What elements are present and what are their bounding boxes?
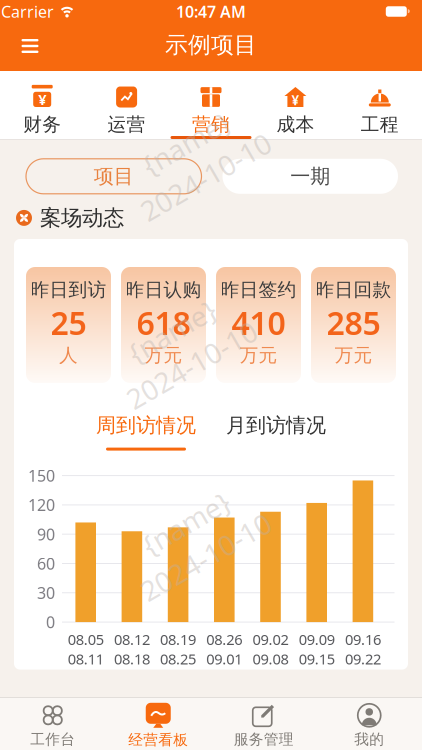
- staticText: 120: [28, 494, 55, 515]
- staticText: Carrier: [1, 1, 54, 22]
- staticText: 618: [136, 301, 190, 344]
- staticText: 成本: [276, 113, 314, 136]
- staticText: 昨日签约: [220, 278, 296, 301]
- staticText: 财务: [23, 113, 61, 136]
- staticText: 09.08: [252, 649, 288, 669]
- button[interactable]: 经营看板: [105, 703, 211, 749]
- button[interactable]: 工程: [338, 71, 422, 139]
- button[interactable]: 运营: [84, 71, 169, 139]
- button[interactable]: 服务管理: [211, 703, 316, 748]
- staticText: 08.25: [160, 649, 196, 669]
- staticText: 08.19: [160, 630, 196, 649]
- staticText: {name}: [147, 502, 244, 539]
- staticText: 工作台: [30, 730, 75, 748]
- button[interactable]: 工作台: [0, 703, 105, 748]
- staticText: 月到访情况: [226, 413, 326, 438]
- button[interactable]: 项目: [26, 159, 201, 194]
- staticText: 经营看板: [128, 731, 188, 749]
- staticText: 08.05: [68, 630, 104, 649]
- staticText: 09.16: [345, 630, 381, 649]
- staticText: 一期: [290, 164, 330, 189]
- staticText: 08.26: [206, 630, 242, 649]
- staticText: 昨日回款: [315, 278, 391, 301]
- button[interactable]: ¥: [0, 71, 84, 139]
- staticText: 我的: [354, 730, 384, 748]
- staticText: 昨日认购: [125, 278, 201, 301]
- button[interactable]: 一期: [222, 159, 398, 194]
- staticText: ¥: [38, 90, 46, 109]
- staticText: 90: [37, 523, 55, 545]
- staticText: 2024-10-10: [123, 541, 269, 578]
- staticText: 10:47 AM: [176, 1, 246, 22]
- staticText: 09.01: [206, 649, 242, 669]
- staticText: 30: [37, 582, 55, 603]
- staticText: 工程: [361, 113, 399, 136]
- button[interactable]: 营销: [169, 71, 253, 139]
- staticText: 运营: [108, 113, 146, 136]
- staticText: 项目: [94, 164, 134, 189]
- staticText: 周到访情况: [96, 413, 196, 438]
- staticText: 2024-10-10: [123, 161, 269, 198]
- staticText: {name}: [133, 310, 230, 347]
- button[interactable]: 周到访情况: [96, 413, 196, 451]
- staticText: 150: [28, 465, 55, 486]
- staticText: 60: [37, 553, 55, 574]
- staticText: 案场动态: [40, 205, 124, 231]
- staticText: 2024-10-10: [109, 349, 255, 386]
- staticText: 0: [46, 611, 55, 633]
- staticText: {name}: [147, 122, 244, 159]
- staticText: 万元: [239, 344, 277, 367]
- staticText: 人: [59, 344, 78, 367]
- staticText: 营销: [192, 113, 230, 136]
- button[interactable]: 月到访情况: [226, 413, 326, 451]
- staticText: 410: [231, 301, 285, 344]
- staticText: 09.15: [299, 649, 335, 669]
- staticText: 08.12: [114, 630, 150, 649]
- staticText: 09.09: [299, 630, 335, 649]
- staticText: 09.22: [345, 649, 381, 669]
- staticText: 万元: [144, 344, 182, 367]
- staticText: ¥: [291, 91, 299, 109]
- staticText: 昨日到访: [30, 278, 106, 301]
- staticText: 08.11: [68, 649, 104, 669]
- staticText: 285: [326, 301, 380, 344]
- staticText: 万元: [334, 344, 372, 367]
- button[interactable]: 我的: [316, 703, 422, 748]
- button[interactable]: Menu: [8, 27, 51, 65]
- button[interactable]: ¥: [253, 71, 338, 139]
- staticText: 25: [50, 301, 86, 344]
- staticText: 09.02: [252, 630, 288, 649]
- staticText: 08.18: [114, 649, 150, 669]
- staticText: 示例项目: [165, 31, 257, 59]
- staticText: 服务管理: [234, 730, 294, 748]
